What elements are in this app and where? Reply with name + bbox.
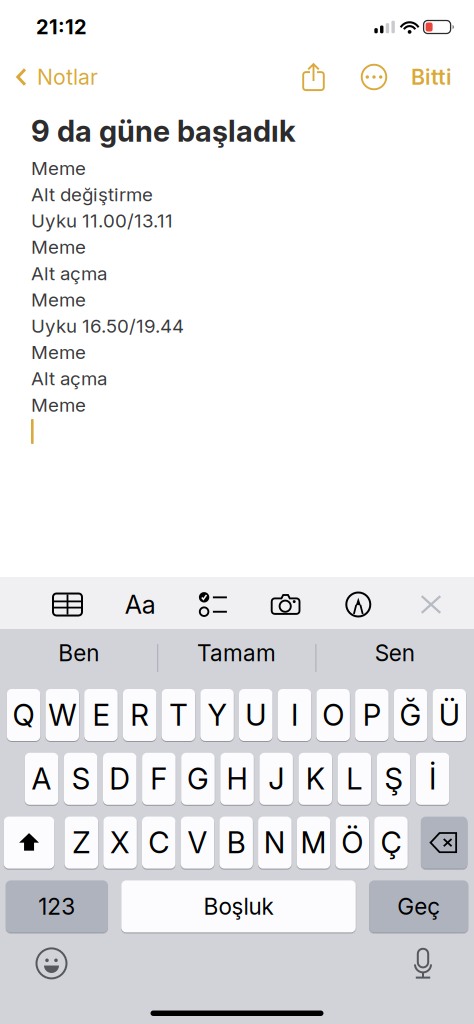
- button[interactable]: K: [298, 753, 332, 805]
- button[interactable]: X: [103, 817, 137, 869]
- button[interactable]: D: [103, 753, 136, 805]
- staticText: Uyku 11.00/13.11: [31, 209, 173, 232]
- staticText: Ö: [341, 825, 363, 860]
- button[interactable]: Tamam: [158, 629, 315, 677]
- button[interactable]: 123: [6, 880, 108, 932]
- button[interactable]: Format: [118, 579, 162, 629]
- staticText: X: [110, 825, 130, 860]
- staticText: Notlar: [37, 64, 98, 90]
- staticText: S: [72, 761, 90, 797]
- button[interactable]: Markup: [336, 579, 380, 629]
- button[interactable]: Ü: [432, 689, 466, 741]
- button[interactable]: More: [352, 54, 396, 100]
- staticText: T: [169, 697, 187, 733]
- button[interactable]: U: [239, 689, 272, 741]
- button[interactable]: Emoji: [29, 946, 73, 980]
- staticText: M: [300, 825, 326, 860]
- button[interactable]: V: [181, 817, 214, 869]
- button[interactable]: F: [142, 753, 176, 805]
- button[interactable]: Table: [45, 579, 89, 629]
- button[interactable]: T: [162, 689, 195, 741]
- staticText: İ: [429, 761, 436, 797]
- staticText: B: [227, 825, 246, 860]
- button[interactable]: J: [259, 753, 293, 805]
- staticText: Alt açma: [31, 262, 107, 285]
- staticText: Meme: [31, 394, 86, 416]
- button[interactable]: Ğ: [394, 689, 427, 741]
- staticText: O: [322, 697, 344, 733]
- staticText: Q: [13, 697, 35, 733]
- button[interactable]: Ç: [374, 817, 408, 869]
- button[interactable]: A: [25, 753, 58, 805]
- button[interactable]: E: [84, 689, 118, 741]
- staticText: Z: [72, 825, 90, 860]
- button[interactable]: G: [181, 753, 215, 805]
- staticText: Tamam: [197, 639, 276, 667]
- button[interactable]: N: [258, 817, 292, 869]
- staticText: P: [363, 697, 381, 733]
- button[interactable]: Y: [200, 689, 234, 741]
- staticText: Meme: [31, 288, 86, 311]
- staticText: Meme: [31, 236, 86, 258]
- staticText: Ü: [439, 697, 460, 733]
- staticText: K: [306, 761, 325, 797]
- staticText: I: [291, 697, 298, 733]
- button[interactable]: P: [355, 689, 389, 741]
- button[interactable]: Share: [291, 54, 336, 100]
- staticText: W: [48, 697, 76, 733]
- button[interactable]: R: [123, 689, 156, 741]
- button[interactable]: M: [297, 817, 330, 869]
- staticText: Aa: [125, 589, 156, 620]
- staticText: L: [346, 761, 362, 797]
- button[interactable]: H: [220, 753, 254, 805]
- staticText: Geç: [397, 893, 440, 920]
- button[interactable]: S: [64, 753, 97, 805]
- staticText: Y: [208, 697, 227, 733]
- staticText: C: [148, 825, 169, 860]
- button[interactable]: W: [45, 689, 79, 741]
- staticText: 9 da güne başladık: [31, 113, 296, 149]
- staticText: J: [268, 761, 284, 797]
- button[interactable]: Close: [409, 579, 453, 629]
- button[interactable]: L: [338, 753, 371, 805]
- button[interactable]: Boşluk: [121, 880, 356, 932]
- button[interactable]: Geç: [369, 880, 468, 932]
- button[interactable]: Notlar: [0, 54, 106, 100]
- button[interactable]: İ: [416, 753, 449, 805]
- button[interactable]: Q: [7, 689, 40, 741]
- button[interactable]: B: [219, 817, 253, 869]
- staticText: Boşluk: [203, 893, 273, 920]
- button[interactable]: C: [142, 817, 175, 869]
- staticText: U: [245, 697, 266, 733]
- staticText: Uyku 16.50/19.44: [31, 315, 184, 337]
- staticText: Meme: [31, 157, 86, 179]
- staticText: A: [32, 761, 52, 797]
- staticText: 21:12: [36, 15, 87, 39]
- staticText: Ş: [384, 761, 402, 797]
- staticText: Sen: [375, 639, 415, 667]
- staticText: R: [130, 697, 149, 733]
- button[interactable]: Checklist: [191, 579, 235, 629]
- staticText: H: [227, 761, 248, 797]
- staticText: 123: [38, 893, 75, 920]
- staticText: D: [109, 761, 130, 797]
- staticText: N: [264, 825, 286, 860]
- button[interactable]: Ben: [0, 629, 158, 677]
- staticText: E: [92, 697, 109, 733]
- button[interactable]: Sen: [315, 629, 474, 677]
- button[interactable]: O: [316, 689, 350, 741]
- button[interactable]: Z: [65, 817, 98, 869]
- staticText: V: [187, 825, 207, 860]
- button[interactable]: Delete: [421, 817, 467, 869]
- button[interactable]: Shift: [4, 817, 54, 869]
- button[interactable]: Ö: [335, 817, 369, 869]
- button[interactable]: Ş: [377, 753, 410, 805]
- button[interactable]: I: [278, 689, 311, 741]
- staticText: Ben: [58, 639, 99, 667]
- staticText: Meme: [31, 341, 86, 364]
- button[interactable]: Dictate: [401, 946, 445, 980]
- staticText: G: [187, 761, 209, 797]
- button[interactable]: Camera: [264, 579, 308, 629]
- button[interactable]: Bitti: [397, 54, 474, 100]
- staticText: F: [150, 761, 167, 797]
